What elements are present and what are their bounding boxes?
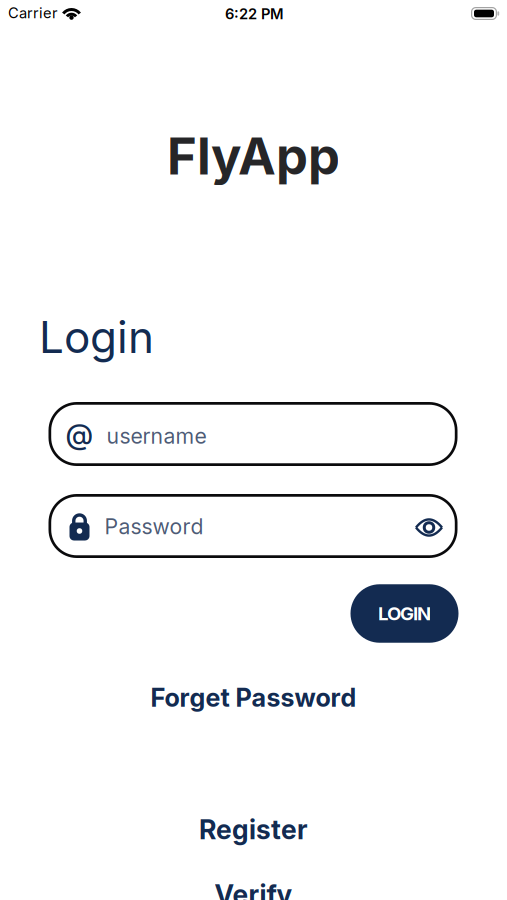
- staticText: username: [106, 423, 206, 449]
- staticText: Forget Password: [150, 683, 356, 712]
- button[interactable]: Register: [199, 814, 308, 845]
- button[interactable]: LOGIN: [350, 584, 458, 643]
- button[interactable]: Show password: [412, 512, 446, 542]
- staticText: LOGIN: [378, 602, 431, 624]
- staticText: Carrier: [8, 4, 58, 22]
- textField[interactable]: username: [48, 402, 457, 466]
- staticText: Login: [39, 311, 154, 363]
- staticText: 6:22 PM: [225, 5, 284, 23]
- button[interactable]: Verify: [214, 879, 292, 900]
- staticText: @: [65, 417, 93, 450]
- textField[interactable]: Password: [48, 494, 457, 558]
- staticText: Verify: [214, 879, 292, 900]
- staticText: Password: [104, 514, 203, 539]
- staticText: Register: [199, 814, 308, 845]
- button[interactable]: Forget Password: [150, 683, 356, 712]
- staticText: FlyApp: [167, 126, 340, 186]
